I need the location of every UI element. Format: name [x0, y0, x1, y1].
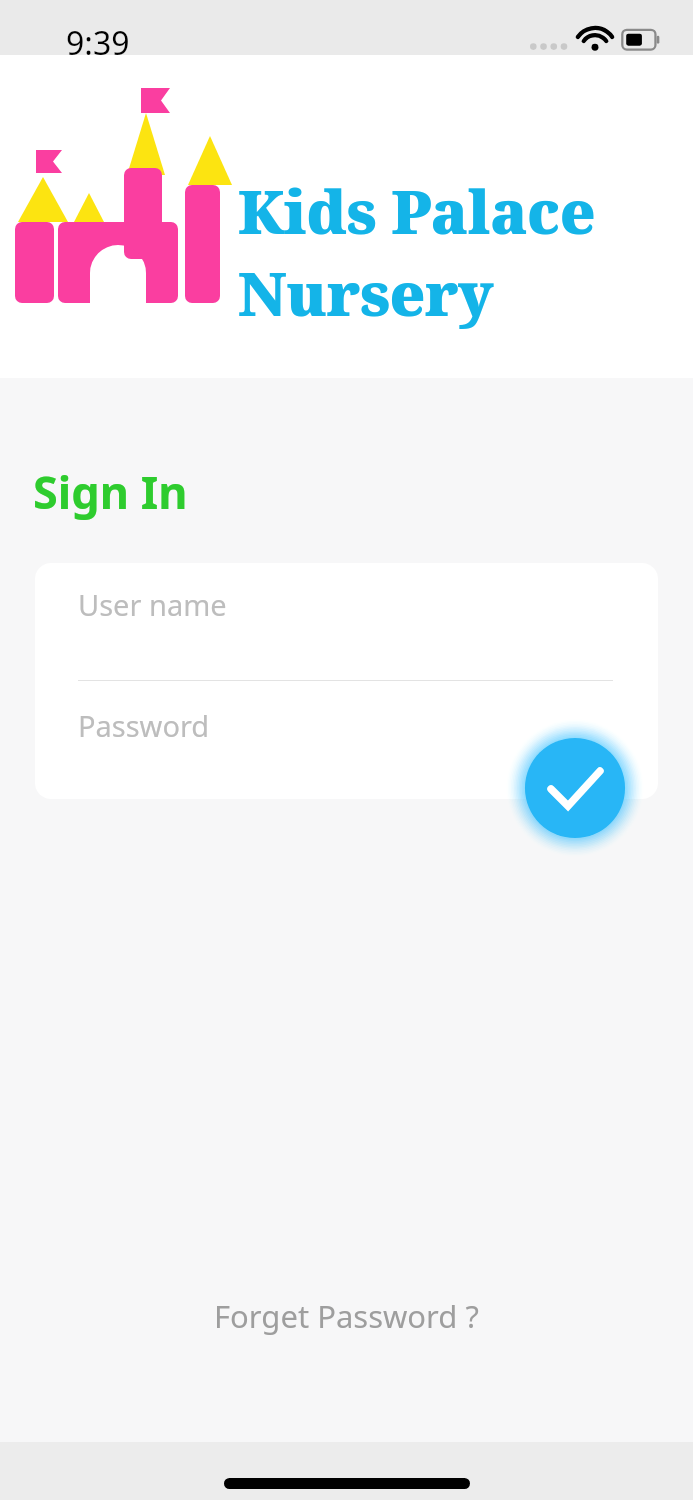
staticText: Nursery: [238, 252, 493, 334]
button[interactable]: Confirm sign in: [510, 723, 640, 853]
button[interactable]: Password: [78, 706, 613, 786]
staticText: Password: [78, 706, 210, 745]
staticText: 9:39: [66, 21, 130, 65]
staticText: Forget Password ?: [214, 1295, 479, 1337]
button[interactable]: Forget Password ?: [0, 1293, 693, 1339]
staticText: Sign In: [33, 461, 188, 522]
staticText: Kids Palace: [238, 170, 596, 252]
staticText: User name: [78, 585, 227, 624]
button[interactable]: User name: [78, 585, 613, 681]
